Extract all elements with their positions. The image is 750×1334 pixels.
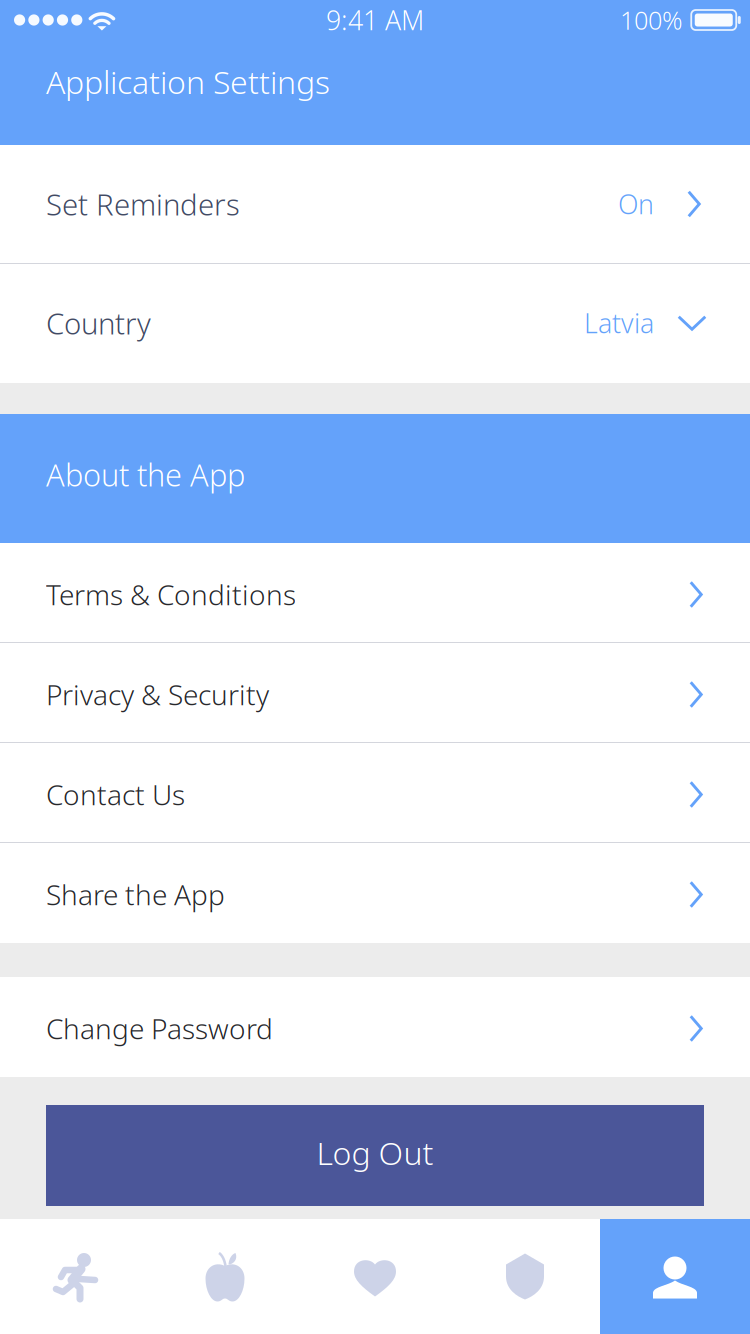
button[interactable]: Terms & Conditions bbox=[0, 543, 750, 643]
staticText: Latvia bbox=[584, 305, 654, 341]
button[interactable]: Profile bbox=[600, 1219, 750, 1334]
button[interactable]: Set Reminders bbox=[0, 145, 750, 264]
staticText: 9:41 AM bbox=[326, 2, 424, 38]
button[interactable]: Activity bbox=[0, 1219, 150, 1334]
staticText: On bbox=[618, 186, 654, 222]
staticText: Country bbox=[46, 303, 151, 342]
button[interactable]: Favorites bbox=[300, 1219, 450, 1334]
button[interactable]: Security bbox=[450, 1219, 600, 1334]
button[interactable]: Share the App bbox=[0, 843, 750, 943]
staticText: Share the App bbox=[46, 876, 225, 913]
staticText: 100% bbox=[620, 3, 683, 37]
staticText: Change Password bbox=[46, 1010, 273, 1047]
button[interactable]: Log Out bbox=[46, 1105, 704, 1206]
staticText: Terms & Conditions bbox=[46, 576, 296, 613]
button[interactable]: Country bbox=[0, 264, 750, 383]
staticText: Application Settings bbox=[46, 60, 330, 103]
staticText: Contact Us bbox=[46, 776, 185, 813]
staticText: Privacy & Security bbox=[46, 676, 269, 713]
button[interactable]: Privacy & Security bbox=[0, 643, 750, 743]
button[interactable]: Change Password bbox=[0, 977, 750, 1077]
staticText: About the App bbox=[46, 454, 245, 495]
button[interactable]: Nutrition bbox=[150, 1219, 300, 1334]
staticText: Log Out bbox=[316, 1131, 433, 1174]
button[interactable]: Contact Us bbox=[0, 743, 750, 843]
staticText: Set Reminders bbox=[46, 184, 240, 223]
